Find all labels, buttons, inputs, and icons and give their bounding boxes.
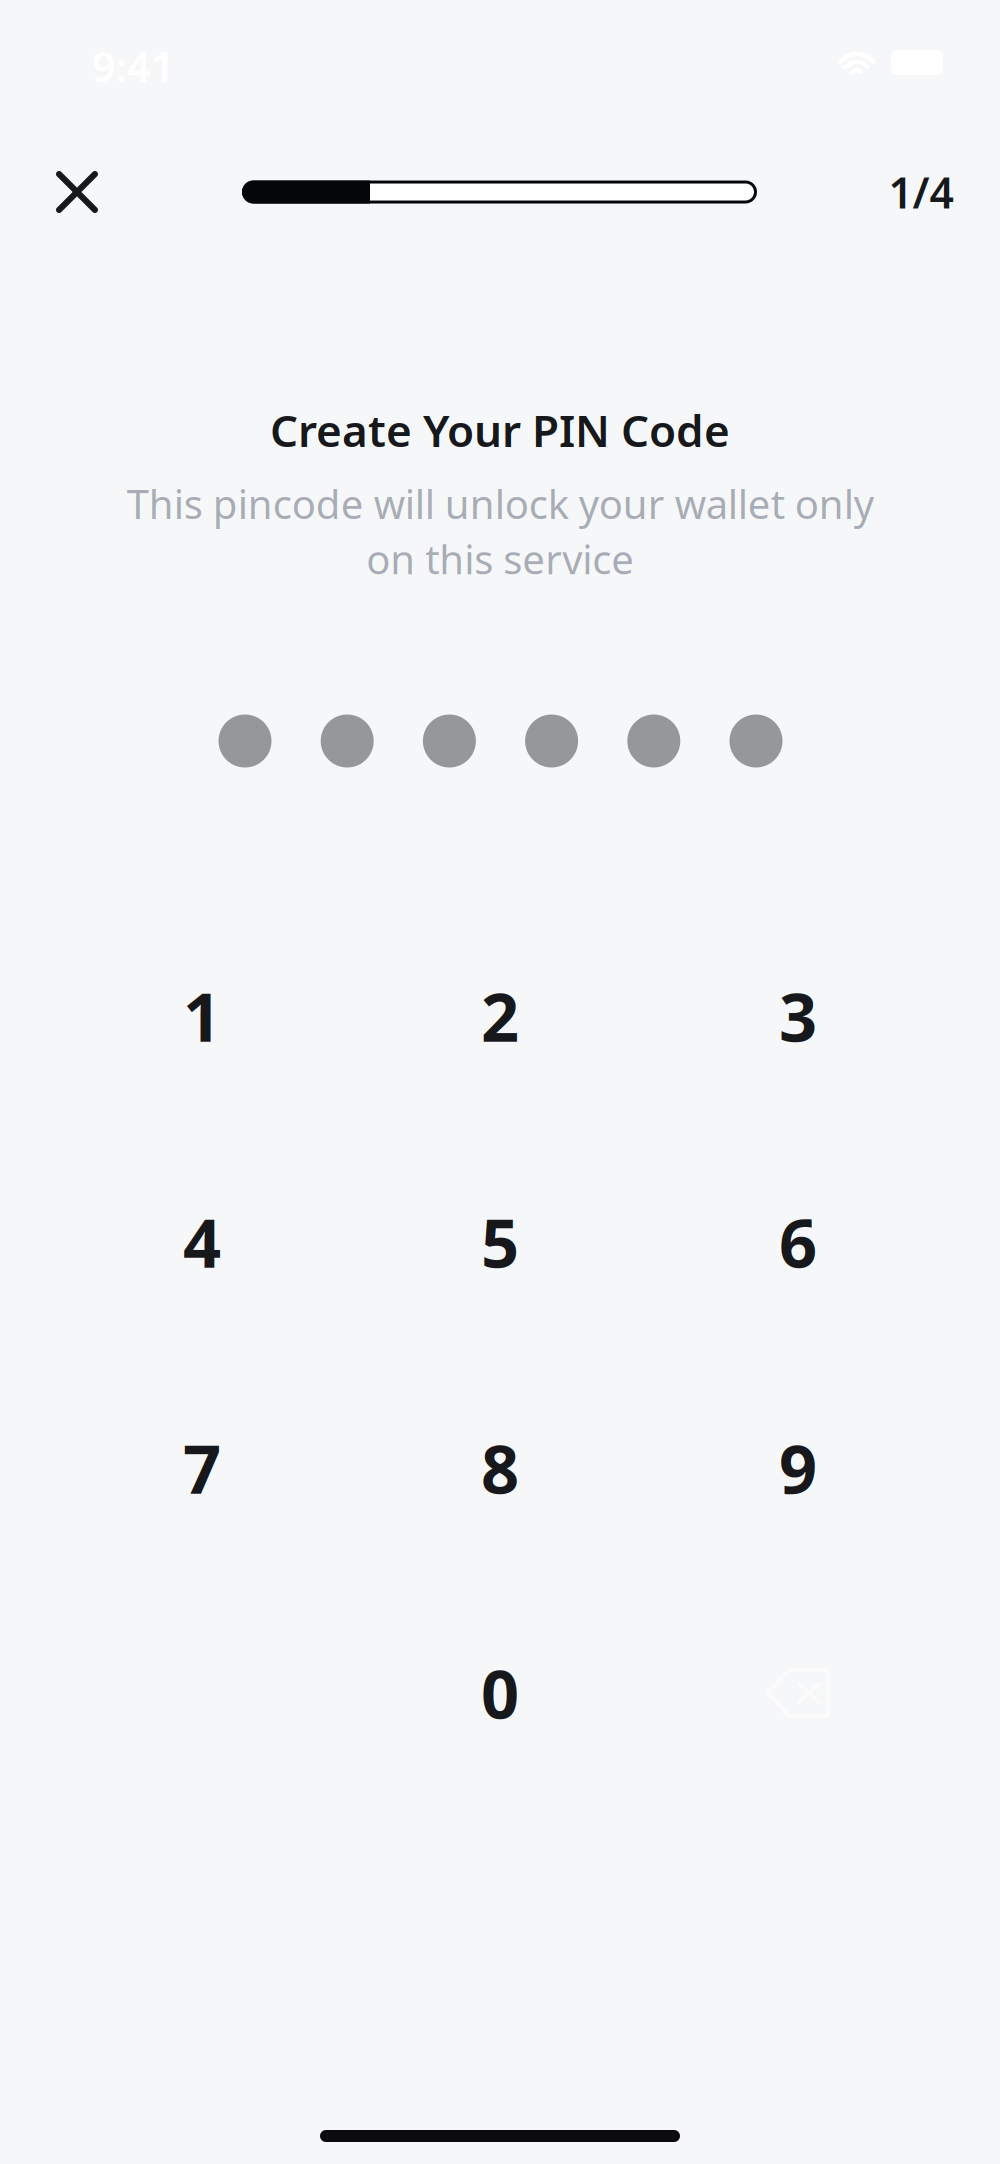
staticText: Create Your PIN Code xyxy=(270,401,730,459)
button[interactable]: 7 xyxy=(122,1388,282,1548)
button[interactable]: 9 xyxy=(718,1388,878,1548)
staticText: 9:41 xyxy=(92,39,175,93)
staticText: 1 xyxy=(183,972,221,1060)
button[interactable]: 3 xyxy=(718,936,878,1096)
staticText: 8 xyxy=(481,1424,519,1512)
staticText: 2 xyxy=(481,972,519,1060)
button[interactable]: 2 xyxy=(420,936,580,1096)
staticText: 0 xyxy=(481,1649,519,1737)
staticText: This pincode will unlock your wallet onl… xyxy=(126,477,873,585)
staticText: 7 xyxy=(183,1424,221,1512)
button[interactable]: 6 xyxy=(718,1162,878,1322)
staticText: 6 xyxy=(779,1198,817,1286)
button[interactable]: 0 xyxy=(420,1613,580,1773)
staticText: 3 xyxy=(779,972,817,1060)
staticText: 5 xyxy=(481,1198,519,1286)
staticText: 9 xyxy=(779,1424,817,1512)
button[interactable]: 5 xyxy=(420,1162,580,1322)
button[interactable]: 4 xyxy=(122,1162,282,1322)
button[interactable]: 8 xyxy=(420,1388,580,1548)
button[interactable]: Close xyxy=(36,151,118,233)
button[interactable]: 1 xyxy=(122,936,282,1096)
staticText: 4 xyxy=(183,1198,221,1286)
staticText: 1/4 xyxy=(888,164,953,220)
